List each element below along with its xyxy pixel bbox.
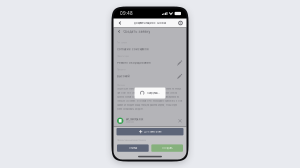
staticText: Тип заявки bbox=[117, 41, 127, 44]
staticText: Отмена bbox=[129, 147, 137, 150]
staticText: документация с Global bbox=[134, 21, 166, 25]
staticText: Описание bbox=[117, 84, 125, 86]
staticText: Ремонт оборудования bbox=[117, 61, 150, 64]
staticText: Подкатегория bbox=[117, 55, 129, 57]
button[interactable]: Back bbox=[115, 18, 124, 27]
button[interactable]: Remove attachment bbox=[177, 118, 183, 124]
staticText: 24 Кб · 12:40 bbox=[126, 121, 134, 123]
staticText: Приоритет bbox=[117, 68, 126, 71]
button[interactable]: Settings bbox=[176, 18, 185, 27]
staticText: Согласие соискателя bbox=[117, 48, 148, 51]
staticText: Следующая плановая смена оборудования за… bbox=[117, 88, 182, 111]
staticText: Создать заявку bbox=[123, 30, 150, 33]
button[interactable]: Создать bbox=[151, 144, 183, 152]
staticText: Проверьте данные перед отправкой bbox=[117, 139, 146, 141]
staticText: Добавить файл bbox=[144, 130, 161, 133]
button[interactable]: Создать заявку bbox=[113, 27, 186, 35]
staticText: 09:48 bbox=[120, 11, 133, 16]
button[interactable]: Добавить файл bbox=[116, 128, 183, 135]
staticText: Создать bbox=[162, 147, 172, 150]
staticText: Загрузка... bbox=[147, 91, 160, 95]
staticText: Высокий bbox=[117, 75, 130, 78]
staticText: акт_осмотра.xlsx bbox=[126, 118, 143, 121]
button[interactable]: Отмена bbox=[117, 144, 149, 152]
